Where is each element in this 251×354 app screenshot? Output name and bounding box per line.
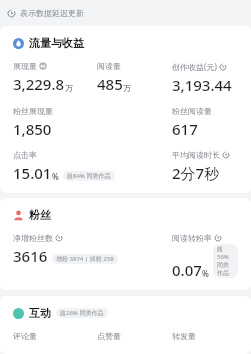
staticText: 阅读量 <box>97 61 121 71</box>
other: 延迟更新 <box>7 9 16 18</box>
button[interactable]: 互动 <box>0 296 251 354</box>
staticText: % <box>202 268 209 279</box>
staticText: 3,229.8 <box>13 74 65 94</box>
staticText: 2分7秒 <box>172 163 220 183</box>
staticText: 617 <box>172 119 198 139</box>
staticText: 平均阅读时长 <box>172 150 220 160</box>
staticText: 增粉 3874 | 掉粉 258 <box>56 255 114 263</box>
staticText: 15.01 <box>13 163 52 183</box>
staticText: 万 <box>65 83 73 93</box>
staticText: 超84% 同类作品 <box>67 172 111 180</box>
staticText: 0.07 <box>172 260 202 280</box>
staticText: 3616 <box>13 246 48 266</box>
staticText: 点赞量 <box>97 331 121 341</box>
staticText: 1,850 <box>13 119 52 139</box>
staticText: 创作收益(元) <box>172 61 217 72</box>
staticText: 净增粉丝数 <box>13 233 53 243</box>
other: 流量与收益 <box>13 38 24 49</box>
staticText: 粉丝阅读量 <box>172 106 212 116</box>
staticText: 展现量 <box>13 61 37 71</box>
other: 粉丝 <box>13 210 24 221</box>
staticText: 粉丝展现量 <box>13 106 53 116</box>
staticText: 转发量 <box>172 331 196 341</box>
staticText: 粉丝 <box>29 208 51 222</box>
staticText: 互动 <box>29 306 51 320</box>
button[interactable]: 粉丝 <box>0 198 251 290</box>
staticText: 万 <box>123 83 131 93</box>
staticText: 3,193.44 <box>172 75 232 95</box>
other: 互动 <box>13 308 24 319</box>
staticText: 485 <box>97 74 123 94</box>
staticText: 点击率 <box>13 150 37 160</box>
staticText: 超56% 同类作品 <box>217 245 234 277</box>
staticText: 表示数据延迟更新 <box>20 8 84 18</box>
staticText: % <box>52 171 59 182</box>
staticText: 评论量 <box>13 331 37 341</box>
staticText: 流量与收益 <box>29 36 84 50</box>
staticText: 超26% 同类作品 <box>60 309 104 317</box>
button[interactable]: 流量与收益 <box>0 26 251 193</box>
staticText: 阅读转粉率 <box>172 233 212 243</box>
